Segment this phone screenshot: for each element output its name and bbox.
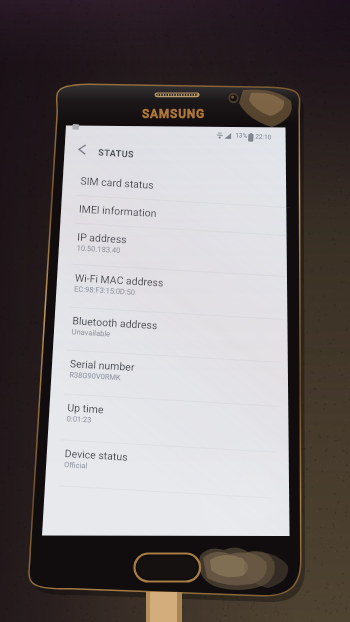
staticText: 0:01:23 (66, 414, 92, 425)
staticText: SIM card status (80, 175, 155, 191)
staticText: Unavailable (71, 327, 111, 338)
button[interactable]: Up time (47, 394, 283, 453)
staticText: STATUS (98, 146, 134, 160)
staticText: Bluetooth address (72, 314, 159, 331)
staticText: R38G90V0RMK (69, 370, 121, 382)
staticText: SAMSUNG (142, 107, 205, 121)
staticText: IMEI information (78, 202, 157, 219)
staticText: 10.50.183.40 (76, 243, 121, 255)
button[interactable]: Wi-Fi MAC address (55, 264, 290, 321)
button[interactable]: Bluetooth address (53, 307, 288, 364)
staticText: 13% (235, 131, 247, 140)
button[interactable]: IP address (58, 223, 293, 278)
staticText: EC:98:F3:15:0D:50 (74, 284, 136, 297)
button[interactable]: Serial number (50, 350, 285, 407)
staticText: IP address (77, 230, 127, 245)
button[interactable]: SIM card status (62, 168, 296, 209)
staticText: Device status (64, 447, 128, 463)
button[interactable]: Device status (45, 440, 280, 499)
staticText: 22:10 (255, 133, 271, 141)
button[interactable]: IMEI information (60, 195, 294, 237)
staticText: Wi-Fi MAC address (75, 271, 164, 288)
staticText: Official (64, 460, 88, 470)
staticText: Up time (67, 401, 105, 415)
staticText: Serial number (70, 357, 135, 373)
button[interactable]: Back (63, 134, 99, 169)
